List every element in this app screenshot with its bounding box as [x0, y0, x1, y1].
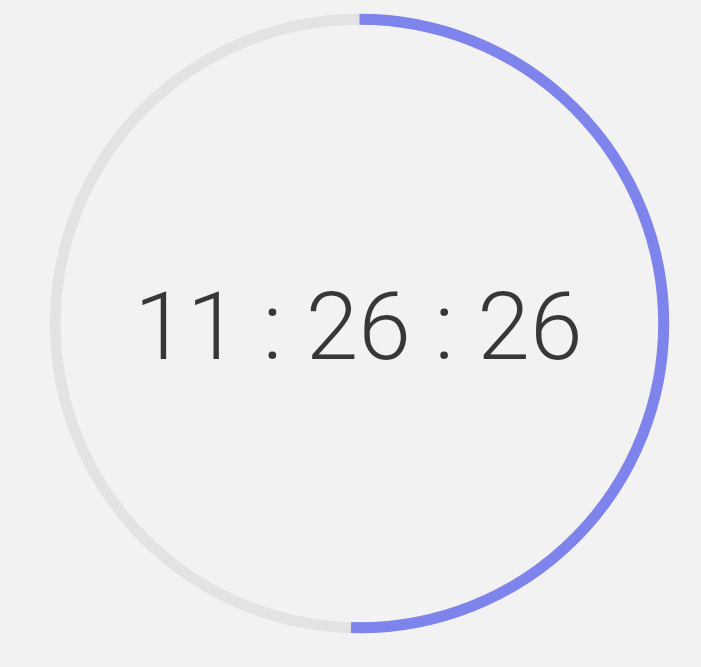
- staticText: 11 : 26 : 26: [134, 271, 583, 382]
